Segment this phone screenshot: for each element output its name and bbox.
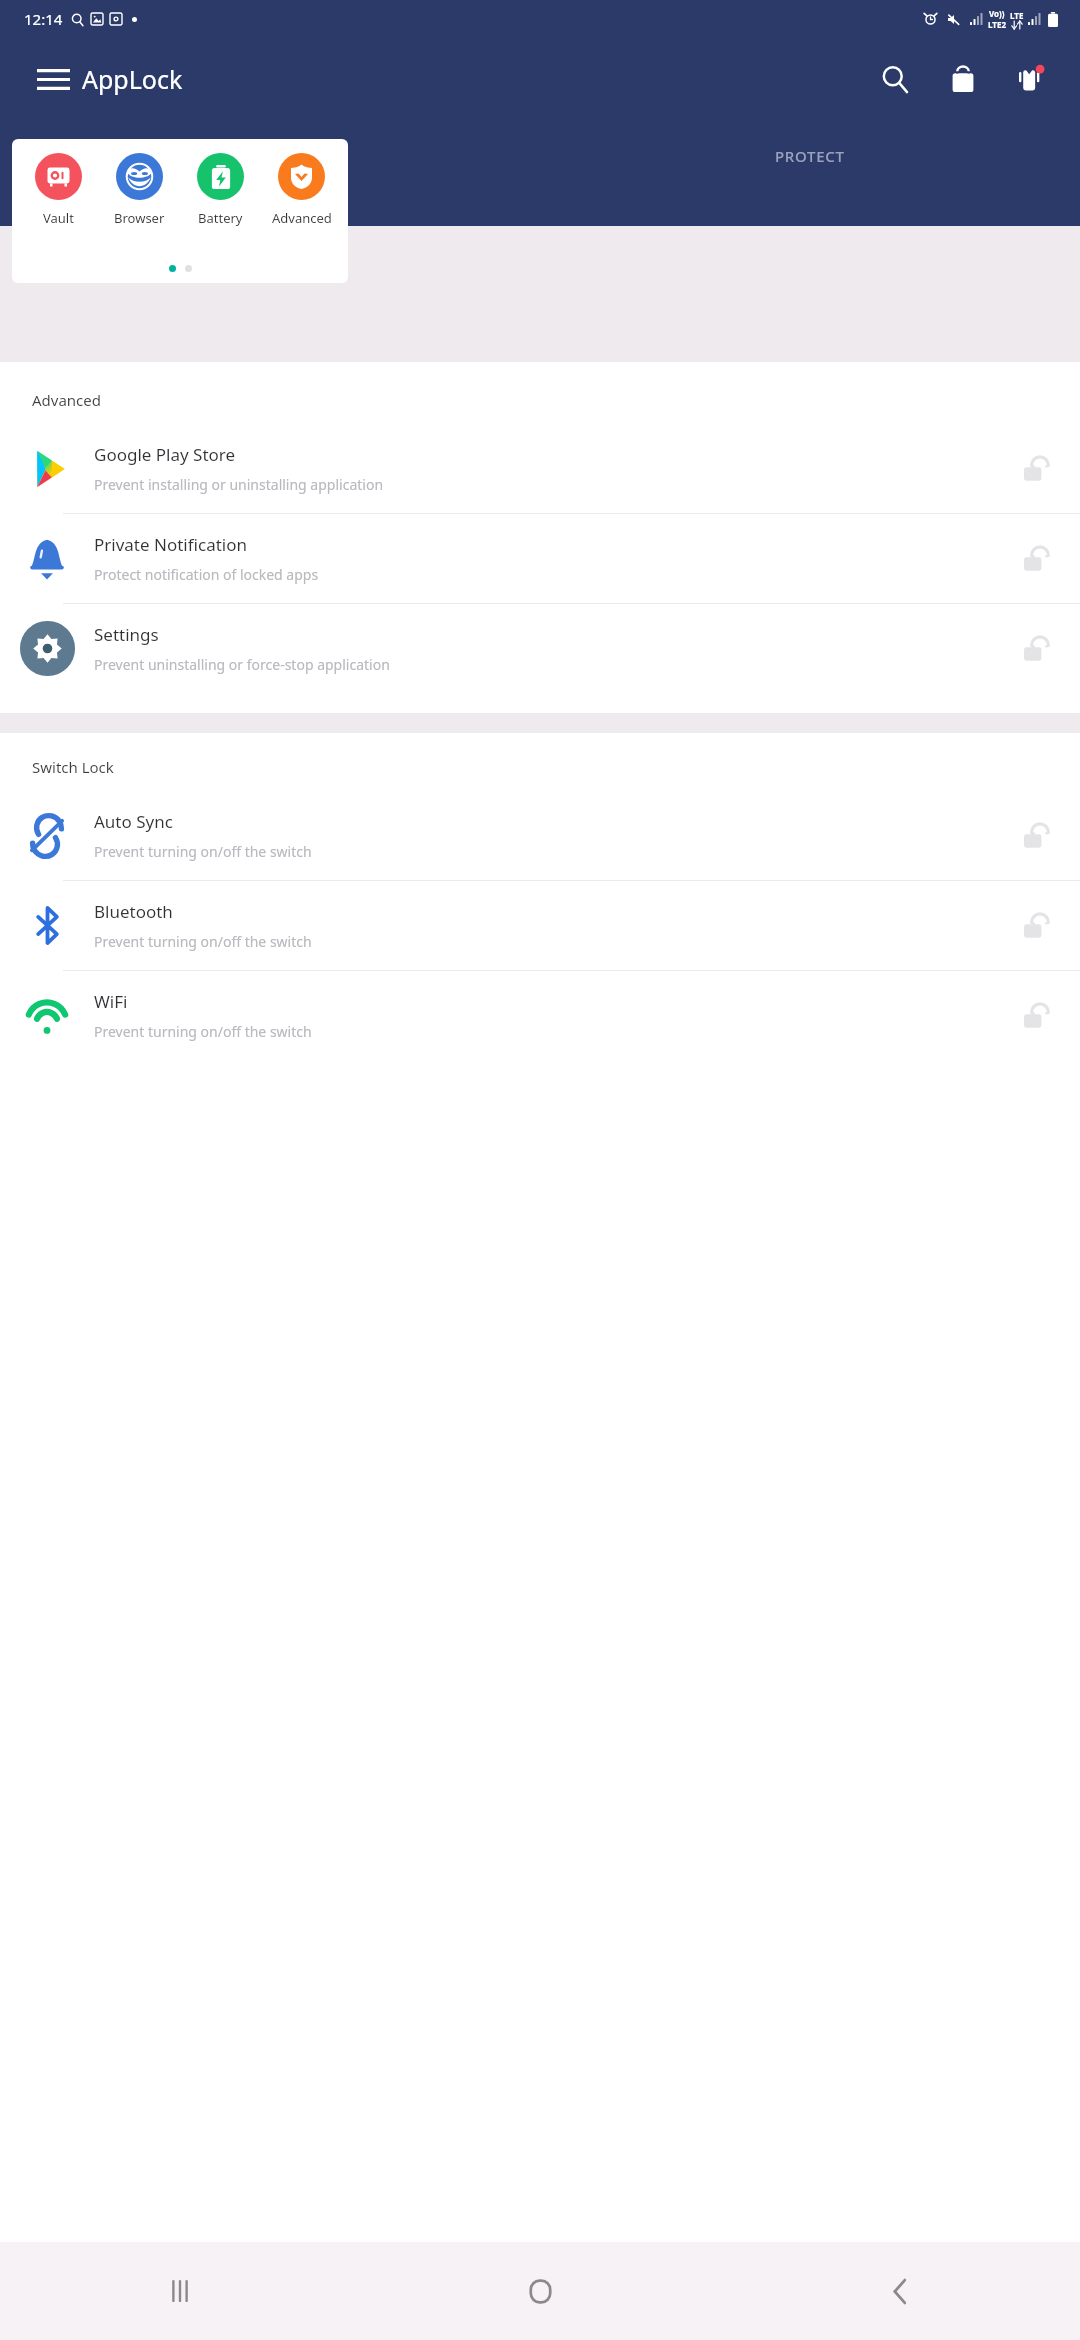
staticText: Browser — [114, 209, 165, 227]
staticText: AppLock — [82, 62, 183, 96]
staticText: Private Notification — [94, 533, 247, 556]
staticText: Switch Lock — [32, 757, 114, 777]
button[interactable]: Vault — [18, 153, 99, 227]
staticText: Settings — [94, 623, 159, 646]
staticText: Protect notification of locked apps — [94, 565, 319, 584]
button[interactable]: Notifications — [1008, 56, 1054, 102]
staticText: PROTECT — [775, 146, 845, 166]
staticText: WiFi — [94, 990, 128, 1013]
button[interactable]: Browser — [99, 153, 180, 227]
button[interactable]: WiFi — [0, 971, 1080, 1060]
staticText: LTE — [1010, 10, 1024, 21]
staticText: PRIVACY — [237, 146, 303, 166]
staticText: Battery — [198, 209, 243, 227]
staticText: Auto Sync — [94, 810, 173, 833]
staticText: Prevent turning on/off the switch — [94, 1022, 312, 1041]
button[interactable]: Google Play Store — [0, 424, 1080, 513]
button[interactable]: Advanced — [261, 153, 342, 227]
button[interactable]: Store — [940, 56, 986, 102]
staticText: Prevent uninstalling or force-stop appli… — [94, 655, 390, 674]
staticText: Vo)) — [989, 8, 1005, 19]
button[interactable]: Battery — [180, 153, 261, 227]
button[interactable]: Private Notification — [0, 514, 1080, 603]
button[interactable]: Home — [360, 2242, 720, 2340]
button[interactable]: PROTECT — [540, 121, 1080, 226]
staticText: Advanced — [32, 390, 102, 410]
staticText: Bluetooth — [94, 900, 173, 923]
staticText: 12:14 — [24, 9, 63, 29]
button[interactable]: Search — [872, 56, 918, 102]
button[interactable]: Back — [720, 2242, 1080, 2340]
staticText: Prevent turning on/off the switch — [94, 842, 312, 861]
staticText: LTE2 — [988, 19, 1006, 30]
button[interactable]: PRIVACY — [0, 121, 540, 226]
button[interactable]: Settings — [0, 604, 1080, 693]
staticText: Vault — [43, 209, 74, 227]
staticText: Advanced — [272, 209, 332, 227]
staticText: Prevent turning on/off the switch — [94, 932, 312, 951]
button[interactable]: Recents — [0, 2242, 360, 2340]
button[interactable]: Menu — [30, 56, 76, 102]
button[interactable]: Auto Sync — [0, 791, 1080, 880]
staticText: Prevent installing or uninstalling appli… — [94, 475, 384, 494]
button[interactable]: Bluetooth — [0, 881, 1080, 970]
staticText: Google Play Store — [94, 443, 236, 466]
